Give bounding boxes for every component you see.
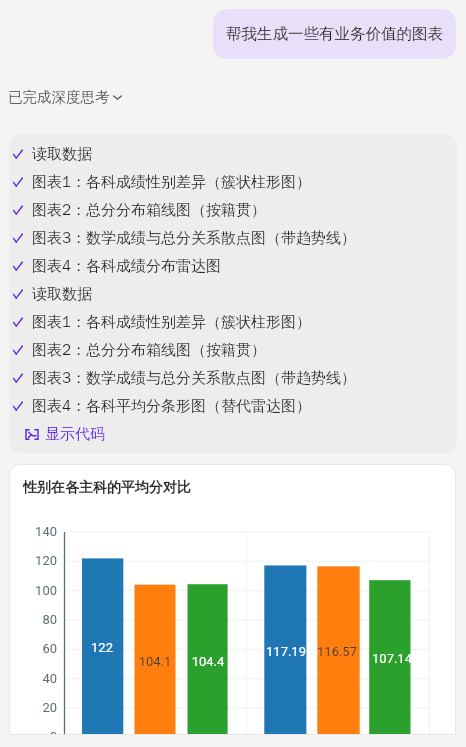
staticText: 已完成深度思考 [8,88,110,106]
button[interactable]: 图表2：总分分布箱线图（按籍贯） [9,196,457,224]
staticText: 图表4：各科成绩分布雷达图 [32,257,221,276]
staticText: 帮我生成一些有业务价值的图表 [226,24,443,44]
staticText: 140 [15,524,57,539]
button[interactable]: 图表3：数学成绩与总分关系散点图（带趋势线） [9,364,457,392]
staticText: 图表2：总分分布箱线图（按籍贯） [32,341,266,360]
staticText: 104.4 [178,654,238,669]
other: Expand reasoning [113,93,122,102]
staticText: 图表1：各科成绩性别差异（簇状柱形图） [32,173,311,192]
staticText: 读取数据 [32,285,92,304]
staticText: 40 [15,671,57,686]
button[interactable]: 图表1：各科成绩性别差异（簇状柱形图） [9,308,457,336]
button[interactable]: Show code [25,420,105,448]
staticText: 性别在各主科的平均分对比 [23,479,191,497]
staticText: 80 [15,612,57,627]
button[interactable]: 已完成深度思考 [8,88,122,106]
staticText: 107.14 [362,651,422,666]
staticText: 图表2：总分分布箱线图（按籍贯） [32,201,266,220]
staticText: 图表4：各科平均分条形图（替代雷达图） [32,397,311,416]
staticText: 20 [15,700,57,715]
button[interactable]: 帮我生成一些有业务价值的图表 [213,9,456,59]
staticText: 120 [15,553,57,568]
staticText: 显示代码 [45,425,105,444]
other: Show code [25,429,39,440]
staticText: 图表1：各科成绩性别差异（簇状柱形图） [32,313,311,332]
button[interactable]: 图表4：各科平均分条形图（替代雷达图） [9,392,457,420]
staticText: 60 [15,641,57,656]
staticText: 读取数据 [32,145,92,164]
button[interactable]: 读取数据 [9,140,457,168]
staticText: 0 [15,729,57,735]
button[interactable]: 读取数据 [9,280,457,308]
staticText: 图表3：数学成绩与总分关系散点图（带趋势线） [32,369,356,388]
button[interactable]: 图表2：总分分布箱线图（按籍贯） [9,336,457,364]
button[interactable]: 图表4：各科成绩分布雷达图 [9,252,457,280]
staticText: 100 [15,583,57,598]
button[interactable]: 图表1：各科成绩性别差异（簇状柱形图） [9,168,457,196]
staticText: 116.57 [307,644,367,659]
staticText: 117.19 [256,644,316,659]
staticText: 104.1 [125,654,185,669]
staticText: 122 [72,640,132,655]
staticText: 图表3：数学成绩与总分关系散点图（带趋势线） [32,229,356,248]
button[interactable]: 图表3：数学成绩与总分关系散点图（带趋势线） [9,224,457,252]
